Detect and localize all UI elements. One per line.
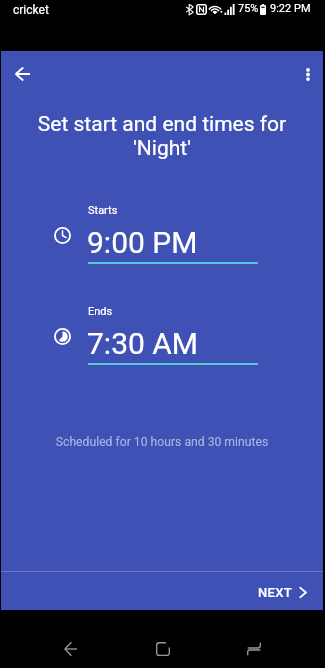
- staticText: Starts: [88, 204, 118, 217]
- button[interactable]: Ends: [51, 305, 271, 373]
- staticText: Scheduled for 10 hours and 30 minutes: [1, 435, 323, 449]
- staticText: Ends: [88, 305, 113, 318]
- button[interactable]: Navigate up: [1, 53, 43, 95]
- staticText: Set start and end times for 'Night': [21, 112, 303, 160]
- staticText: 7:30 AM: [87, 326, 199, 361]
- staticText: 9:00 PM: [87, 225, 198, 260]
- button[interactable]: Back: [25, 629, 116, 668]
- button[interactable]: Starts: [51, 204, 271, 272]
- staticText: NEXT: [258, 585, 292, 600]
- staticText: 9:22 PM: [270, 2, 311, 15]
- staticText: 75%: [238, 2, 259, 15]
- button[interactable]: Recent apps: [208, 629, 299, 668]
- button[interactable]: Home: [117, 629, 208, 668]
- button[interactable]: NEXT: [250, 577, 315, 608]
- staticText: cricket: [13, 3, 49, 17]
- button[interactable]: More options: [287, 53, 325, 95]
